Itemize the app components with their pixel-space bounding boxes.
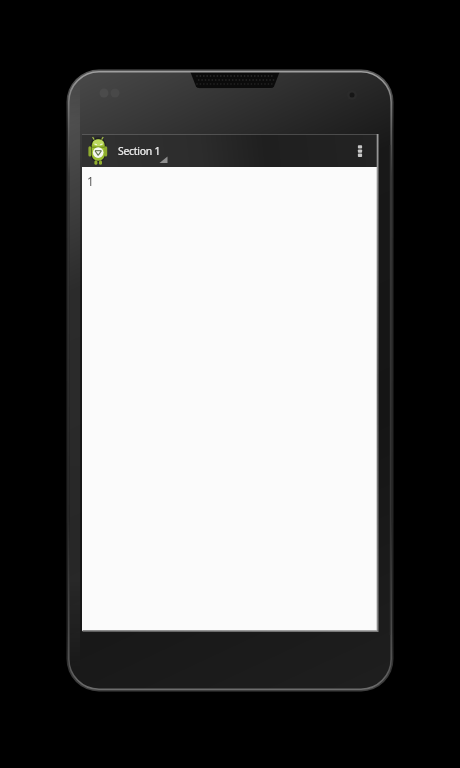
button[interactable] [82,134,175,166]
staticText: 1 [87,173,94,189]
button[interactable] [345,134,377,166]
button[interactable] [82,134,377,167]
button[interactable] [82,167,377,631]
staticText: Section 1 [118,144,161,158]
